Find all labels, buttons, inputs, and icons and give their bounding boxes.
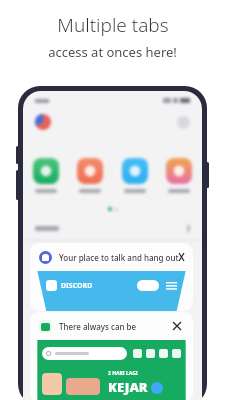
staticText: KEJAR [108, 378, 148, 395]
button[interactable]: There always can be [30, 312, 193, 400]
button[interactable]: Close tab [170, 319, 184, 333]
staticText: Your place to talk and hang out [59, 252, 179, 263]
button[interactable]: Close tab [179, 250, 184, 264]
staticText: Multiple tabs [57, 12, 169, 38]
staticText: DISCORD [61, 281, 93, 291]
staticText: There always can be [59, 321, 137, 332]
button[interactable]: Your place to talk and hang out [30, 243, 193, 311]
staticText: access at onces here! [48, 43, 177, 61]
staticText: 2 HARI LAGI [108, 370, 138, 377]
